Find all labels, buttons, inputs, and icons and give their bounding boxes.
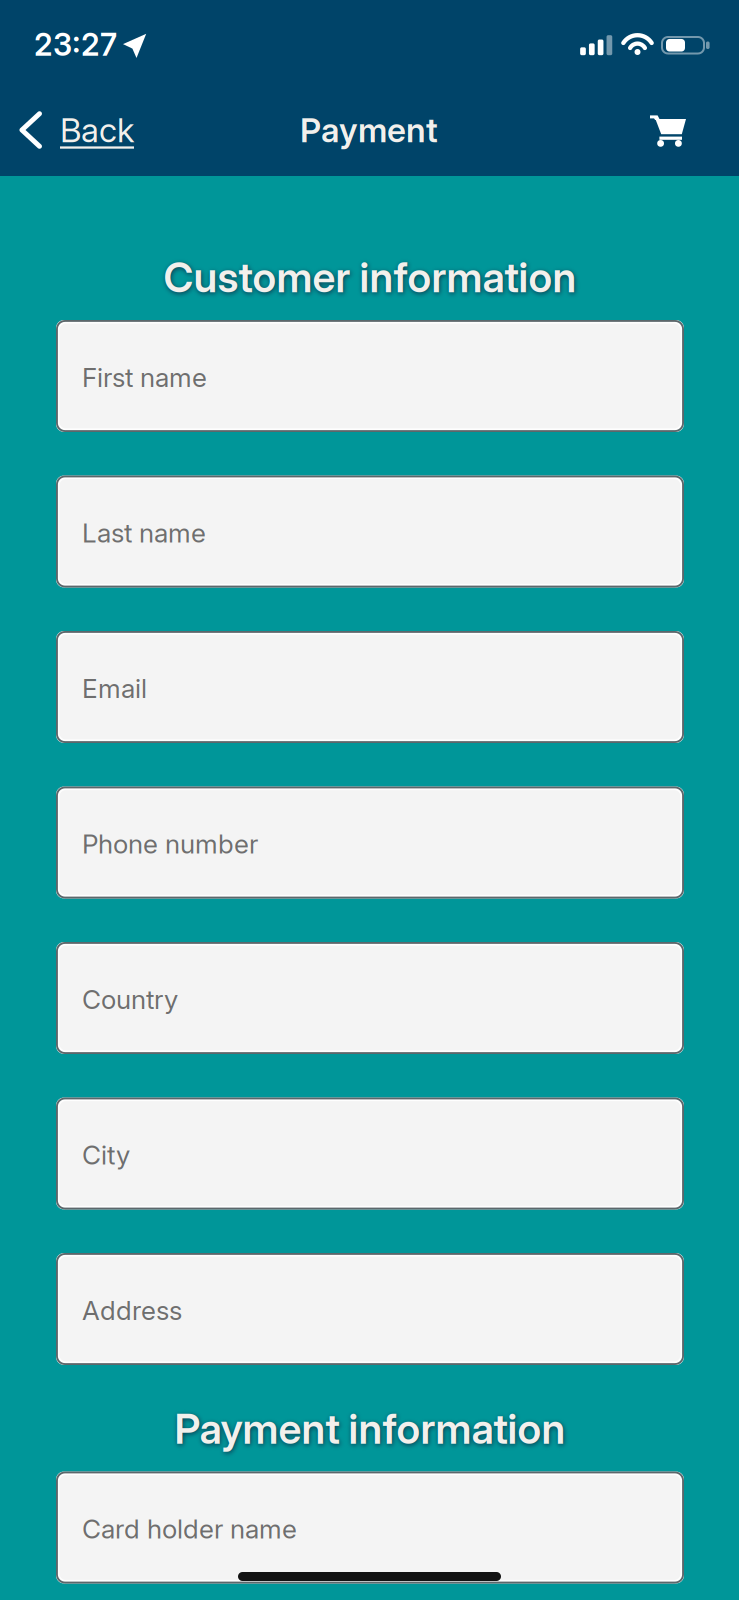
- staticText: Email: [82, 673, 147, 704]
- button[interactable]: Country: [56, 942, 684, 1054]
- button[interactable]: Back: [0, 96, 150, 164]
- staticText: City: [82, 1139, 130, 1171]
- staticText: Phone number: [82, 828, 258, 860]
- button[interactable]: Email: [56, 631, 684, 743]
- button[interactable]: Address: [56, 1253, 684, 1365]
- staticText: First name: [82, 362, 207, 393]
- staticText: 23:27: [34, 26, 117, 63]
- staticText: Payment information: [174, 1404, 565, 1454]
- button[interactable]: Cart: [630, 98, 706, 163]
- staticText: Card holder name: [82, 1513, 297, 1545]
- button[interactable]: First name: [56, 320, 684, 432]
- button[interactable]: Last name: [56, 475, 684, 587]
- staticText: Address: [82, 1295, 182, 1326]
- staticText: Customer information: [163, 252, 576, 302]
- staticText: Back: [60, 110, 134, 150]
- button[interactable]: Card holder name: [56, 1471, 684, 1583]
- button[interactable]: Phone number: [56, 786, 684, 898]
- staticText: Payment: [300, 110, 438, 150]
- button[interactable]: City: [56, 1097, 684, 1209]
- staticText: Last name: [82, 517, 206, 549]
- staticText: Country: [82, 984, 178, 1015]
